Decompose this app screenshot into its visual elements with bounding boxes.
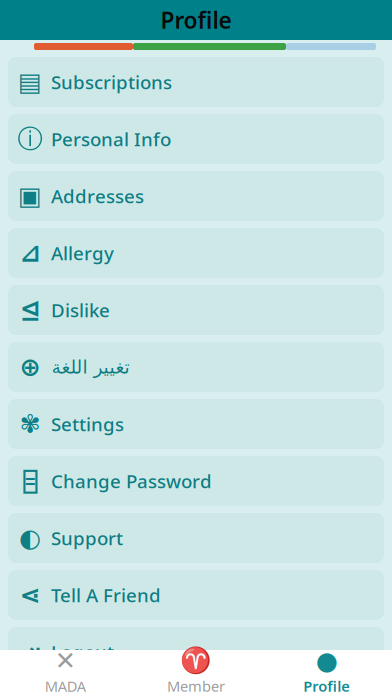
staticText: Dislike: [51, 298, 110, 322]
staticText: Logout: [51, 640, 114, 664]
staticText: Tell A Friend: [51, 583, 161, 607]
staticText: Support: [51, 526, 123, 550]
staticText: Subscriptions: [51, 70, 172, 94]
button[interactable]: ●: [261, 642, 392, 696]
staticText: ▣: [18, 182, 42, 210]
staticText: ✾: [19, 410, 40, 438]
button[interactable]: ⊿: [8, 228, 384, 278]
button[interactable]: ⓘ: [8, 114, 384, 164]
button[interactable]: ⊕: [8, 342, 384, 392]
button[interactable]: ♈: [131, 642, 261, 696]
staticText: ⊕: [19, 353, 40, 381]
staticText: Allergy: [51, 241, 114, 265]
staticText: Change Password: [51, 469, 212, 493]
staticText: Settings: [51, 412, 124, 436]
staticText: ♈: [180, 646, 212, 675]
staticText: ◐: [19, 524, 41, 552]
button[interactable]: ✾: [8, 399, 384, 449]
button[interactable]: ⊴: [8, 285, 384, 335]
button[interactable]: ▤: [8, 57, 384, 107]
button[interactable]: ⌸: [8, 456, 384, 506]
staticText: Profile: [303, 676, 350, 696]
button[interactable]: ⋖: [8, 570, 384, 620]
staticText: Member: [167, 676, 225, 696]
staticText: ⊿: [19, 239, 40, 267]
staticText: ▤: [18, 68, 42, 96]
staticText: تغيير اللغة: [51, 356, 129, 378]
staticText: ⋖: [19, 581, 40, 609]
staticText: Personal Info: [51, 127, 171, 151]
staticText: ⇥: [19, 638, 40, 666]
staticText: Addresses: [51, 184, 144, 208]
staticText: ●: [316, 646, 338, 675]
button[interactable]: ✕: [0, 642, 131, 696]
staticText: ⓘ: [17, 123, 42, 154]
staticText: ⊴: [19, 296, 40, 324]
button[interactable]: ◐: [8, 513, 384, 563]
button[interactable]: ⇥: [8, 627, 384, 677]
staticText: Profile: [160, 5, 231, 35]
button[interactable]: ▣: [8, 171, 384, 221]
staticText: ⌸: [22, 464, 37, 498]
staticText: ✕: [55, 646, 76, 675]
staticText: MADA: [45, 676, 86, 696]
